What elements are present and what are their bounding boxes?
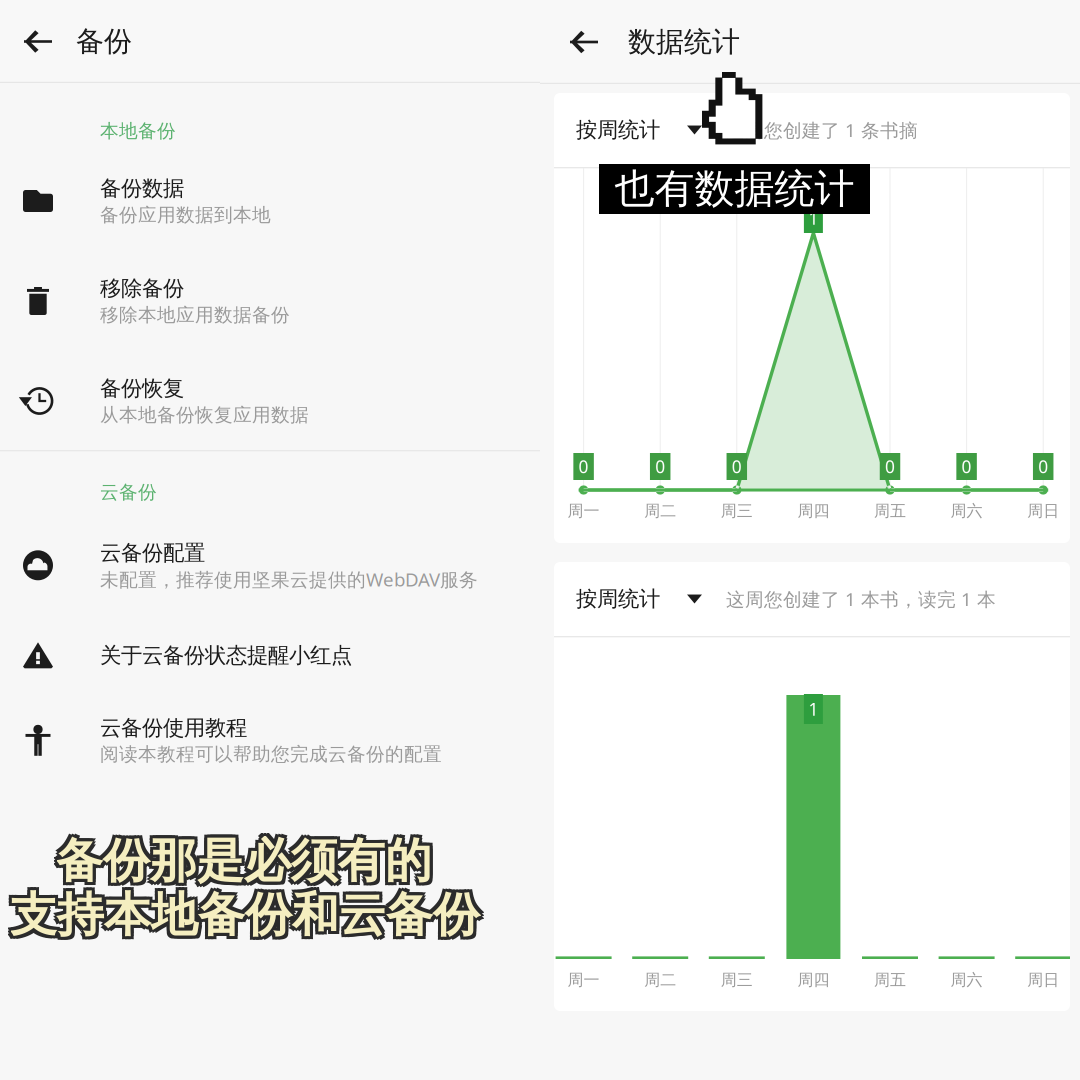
staticText: 备份那是必须有的 [56,829,432,887]
staticText: 支持本地备份和云备份 [13,889,483,947]
staticText: 这周您创建了 1 条书摘 [726,118,918,142]
staticText: 按周统计 [576,117,660,143]
staticText: 支持本地备份和云备份 [10,883,480,941]
staticText: 0 [962,455,972,478]
staticText: 周六 [951,501,983,521]
button[interactable]: 移除备份 [0,269,540,333]
staticText: 备份那是必须有的 [53,829,429,887]
staticText: 周一 [568,501,600,521]
staticText: 备份恢复 [100,375,184,402]
staticText: 关于云备份状态提醒小红点 [100,642,352,668]
staticText: 0 [579,455,589,478]
staticText: 备份那是必须有的 [59,829,435,887]
staticText: 云备份 [100,481,157,504]
staticText: 备份那是必须有的 [53,835,429,893]
staticText: 1 [808,697,818,720]
staticText: 周四 [797,501,829,521]
staticText: 0 [1038,455,1048,478]
staticText: 移除备份 [100,275,184,302]
staticText: 移除本地应用数据备份 [100,303,290,326]
staticText: 周六 [951,970,983,990]
button[interactable]: 按周统计 [554,93,712,167]
staticText: 备份应用数据到本地 [100,203,271,226]
staticText: 周五 [874,970,906,990]
staticText: 未配置，推荐使用坚果云提供的WebDAV服务 [100,567,478,592]
staticText: 周二 [644,970,676,990]
staticText: 本地备份 [100,119,176,142]
staticText: 支持本地备份和云备份 [7,886,477,944]
staticText: 备份 [76,24,132,59]
staticText: 0 [885,455,895,478]
staticText: 1 [808,206,818,229]
staticText: 也有数据统计 [614,164,854,213]
staticText: 支持本地备份和云备份 [7,883,477,941]
staticText: 云备份使用教程 [100,715,247,741]
staticText: 备份那是必须有的 [56,835,432,893]
button[interactable]: Back [0,0,76,83]
staticText: 支持本地备份和云备份 [7,889,477,947]
button[interactable]: 云备份配置 [0,533,540,597]
staticText: 周五 [874,501,906,521]
staticText: 这周您创建了 1 本书，读完 1 本 [726,587,996,611]
button[interactable]: Back [540,0,628,84]
button[interactable]: 备份数据 [0,169,540,233]
staticText: 周一 [568,970,600,990]
staticText: 支持本地备份和云备份 [13,886,483,944]
staticText: 周四 [797,970,829,990]
staticText: 周三 [721,970,753,990]
staticText: 从本地备份恢复应用数据 [100,403,309,426]
staticText: 0 [732,455,742,478]
button[interactable]: 关于云备份状态提醒小红点 [0,623,540,687]
staticText: 支持本地备份和云备份 [10,889,480,947]
staticText: 备份那是必须有的 [59,835,435,893]
staticText: 周三 [721,501,753,521]
staticText: 支持本地备份和云备份 [13,883,483,941]
staticText: 阅读本教程可以帮助您完成云备份的配置 [100,743,442,766]
staticText: 支持本地备份和云备份 [10,886,480,944]
staticText: 备份那是必须有的 [53,832,429,890]
button[interactable]: 备份恢复 [0,369,540,433]
staticText: 备份数据 [100,175,184,202]
staticText: 周日 [1027,970,1059,990]
staticText: 云备份配置 [100,540,205,566]
staticText: 周二 [644,501,676,521]
staticText: 备份那是必须有的 [59,832,435,890]
staticText: 数据统计 [628,25,740,59]
staticText: 按周统计 [576,586,660,612]
staticText: 0 [655,455,665,478]
staticText: 备份那是必须有的 [56,832,432,890]
button[interactable]: 云备份使用教程 [0,708,540,772]
button[interactable]: 按周统计 [554,562,712,636]
staticText: 周日 [1027,501,1059,521]
